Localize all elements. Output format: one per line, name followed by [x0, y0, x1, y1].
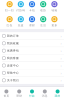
- button[interactable]: 我的订单: [0, 32, 64, 39]
- button[interactable]: 理财: [13, 87, 26, 100]
- staticText: 充值: [18, 24, 24, 27]
- button[interactable]: 红包: [4, 15, 15, 27]
- button[interactable]: 消息: [38, 87, 51, 100]
- button[interactable]: 生活: [38, 15, 49, 27]
- staticText: 转账: [51, 9, 57, 12]
- button[interactable]: 扫一扫: [4, 0, 15, 12]
- staticText: 消息: [42, 94, 48, 98]
- staticText: 设置中心: [7, 64, 19, 67]
- staticText: ›: [61, 48, 62, 53]
- staticText: 我的客服: [7, 56, 19, 60]
- button[interactable]: 帮助中心: [0, 69, 64, 76]
- staticText: 理财: [16, 94, 22, 98]
- button[interactable]: 付款: [26, 87, 38, 100]
- staticText: 付款: [29, 94, 35, 98]
- staticText: 卡包: [29, 9, 35, 12]
- button[interactable]: 理财: [26, 15, 38, 27]
- staticText: 更多: [51, 24, 57, 27]
- staticText: 我的订单: [7, 34, 19, 38]
- button[interactable]: 更多: [49, 15, 60, 27]
- staticText: 首页: [3, 94, 9, 98]
- staticText: 我的: [55, 94, 61, 98]
- staticText: 优惠券包: [7, 49, 19, 52]
- button[interactable]: 优惠券包: [0, 47, 64, 54]
- button[interactable]: 充值: [15, 15, 26, 27]
- staticText: ›: [61, 55, 62, 61]
- button[interactable]: 我的客服: [0, 55, 64, 62]
- button[interactable]: 收款: [38, 0, 49, 12]
- button[interactable]: 我的收藏: [0, 40, 64, 47]
- staticText: ›: [61, 41, 62, 46]
- staticText: 我的收藏: [7, 42, 19, 45]
- button[interactable]: 关于我们: [0, 77, 64, 84]
- staticText: ›: [61, 63, 62, 68]
- staticText: 付款码: [16, 9, 25, 12]
- staticText: 关于我们: [7, 79, 19, 82]
- staticText: 生活: [40, 24, 46, 27]
- button[interactable]: 首页: [0, 87, 13, 100]
- button[interactable]: 我的: [51, 87, 64, 100]
- staticText: 理财: [29, 24, 35, 27]
- staticText: 帮助中心: [7, 71, 19, 75]
- staticText: 扫一扫: [5, 9, 14, 12]
- staticText: ›: [61, 78, 62, 83]
- button[interactable]: 卡包: [26, 0, 38, 12]
- staticText: 红包: [7, 24, 13, 27]
- staticText: ›: [61, 70, 62, 75]
- button[interactable]: 转账: [49, 0, 60, 12]
- button[interactable]: 付款码: [15, 0, 26, 12]
- staticText: ›: [61, 33, 62, 38]
- button[interactable]: 设置中心: [0, 62, 64, 69]
- staticText: 收款: [40, 9, 46, 12]
